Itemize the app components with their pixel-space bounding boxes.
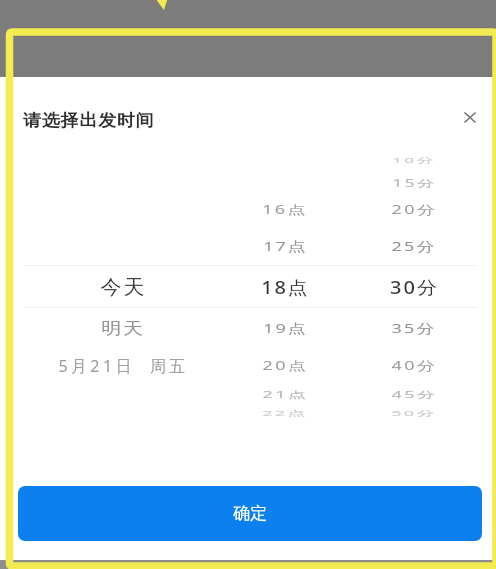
staticText: 5月21日 周五: [58, 355, 189, 377]
button[interactable]: Close: [451, 98, 489, 136]
staticText: 35分: [391, 319, 437, 337]
staticText: 25分: [391, 237, 437, 255]
staticText: 请选择出发时间: [23, 110, 155, 131]
staticText: 19点: [263, 320, 308, 337]
staticText: 明天: [101, 318, 145, 339]
staticText: 18点: [261, 275, 310, 300]
staticText: 确定: [233, 503, 268, 524]
staticText: 30分: [390, 275, 439, 300]
staticText: 40分: [391, 357, 438, 374]
staticText: 22点: [262, 408, 308, 418]
button[interactable]: 请选择出发时间: [8, 93, 188, 147]
staticText: 今天: [100, 275, 147, 299]
staticText: 17点: [263, 237, 308, 255]
staticText: 15分: [392, 177, 437, 190]
staticText: 10分: [392, 155, 436, 165]
staticText: 50分: [391, 408, 437, 418]
staticText: 20分: [391, 201, 438, 218]
staticText: 21点: [262, 388, 309, 400]
staticText: 16点: [262, 201, 308, 218]
staticText: 45分: [391, 388, 438, 400]
staticText: 20点: [262, 357, 309, 374]
button[interactable]: 确定: [18, 486, 482, 541]
